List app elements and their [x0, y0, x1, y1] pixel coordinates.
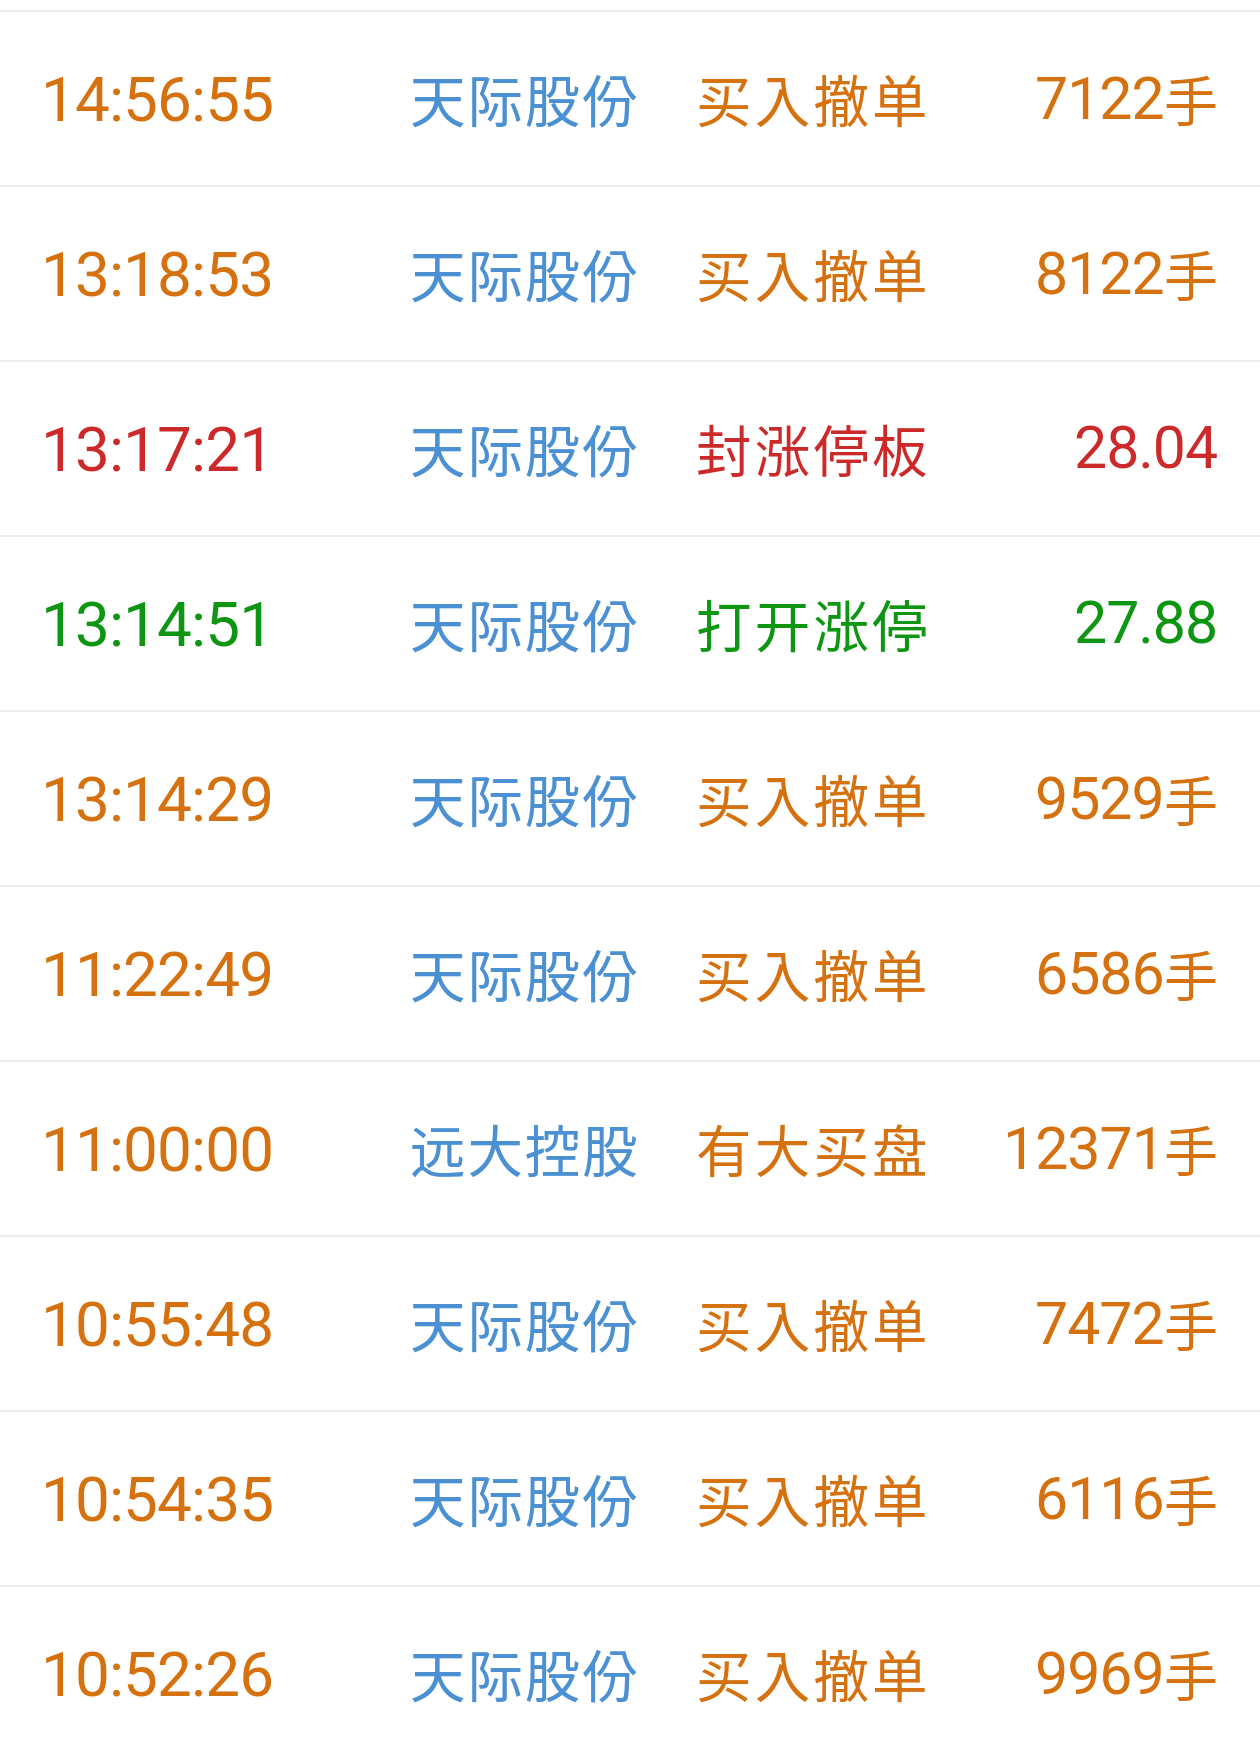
staticText: 8122 — [1035, 239, 1164, 308]
staticText: 手 — [1164, 1109, 1218, 1187]
button[interactable]: 13:14:51 — [0, 537, 1260, 710]
staticText: 27.88 — [1074, 588, 1218, 657]
staticText: 手 — [1164, 1634, 1218, 1712]
staticText: 7472 — [1035, 1289, 1164, 1358]
button[interactable]: 11:22:49 — [0, 887, 1260, 1060]
staticText: 手 — [1164, 1284, 1218, 1362]
staticText: 手 — [1164, 234, 1218, 312]
staticText: 9969 — [1035, 1639, 1164, 1708]
staticText: 天际股份 — [410, 408, 640, 488]
staticText: 12371 — [1003, 1114, 1164, 1183]
staticText: 手 — [1164, 934, 1218, 1012]
staticText: 10:55:48 — [41, 1288, 274, 1361]
button[interactable]: 13:18:53 — [0, 187, 1260, 360]
staticText: 买入撤单 — [696, 1633, 931, 1713]
staticText: 天际股份 — [410, 233, 640, 313]
staticText: 手 — [1164, 759, 1218, 837]
staticText: 天际股份 — [410, 758, 640, 838]
staticText: 28.04 — [1074, 413, 1218, 482]
button[interactable]: 13:17:21 — [0, 362, 1260, 535]
staticText: 买入撤单 — [696, 233, 931, 313]
staticText: 天际股份 — [410, 583, 640, 663]
staticText: 有大买盘 — [696, 1108, 931, 1188]
staticText: 手 — [1164, 59, 1218, 137]
staticText: 天际股份 — [410, 1283, 640, 1363]
staticText: 天际股份 — [410, 933, 640, 1013]
staticText: 11:22:49 — [41, 938, 274, 1011]
staticText: 天际股份 — [410, 58, 640, 138]
staticText: 手 — [1164, 1459, 1218, 1537]
button[interactable]: 10:55:48 — [0, 1237, 1260, 1410]
staticText: 11:00:00 — [41, 1113, 274, 1186]
staticText: 6586 — [1035, 939, 1164, 1008]
staticText: 6116 — [1035, 1464, 1164, 1533]
staticText: 13:18:53 — [41, 238, 274, 311]
button[interactable]: 14:56:55 — [0, 12, 1260, 185]
staticText: 13:14:29 — [41, 763, 274, 836]
staticText: 封涨停板 — [696, 408, 931, 488]
staticText: 买入撤单 — [696, 933, 931, 1013]
staticText: 10:52:26 — [41, 1638, 274, 1711]
staticText: 14:56:55 — [41, 63, 274, 136]
staticText: 天际股份 — [410, 1633, 640, 1713]
button[interactable]: 10:54:35 — [0, 1412, 1260, 1585]
staticText: 7122 — [1035, 64, 1164, 133]
staticText: 买入撤单 — [696, 758, 931, 838]
staticText: 远大控股 — [410, 1108, 640, 1188]
staticText: 买入撤单 — [696, 58, 931, 138]
staticText: 10:54:35 — [41, 1463, 274, 1536]
staticText: 买入撤单 — [696, 1283, 931, 1363]
button[interactable]: 13:14:29 — [0, 712, 1260, 885]
staticText: 打开涨停 — [696, 583, 931, 663]
staticText: 13:17:21 — [41, 413, 274, 486]
staticText: 买入撤单 — [696, 1458, 931, 1538]
staticText: 13:14:51 — [41, 588, 274, 661]
staticText: 天际股份 — [410, 1458, 640, 1538]
button[interactable]: 10:52:26 — [0, 1587, 1260, 1748]
button[interactable]: 11:00:00 — [0, 1062, 1260, 1235]
staticText: 9529 — [1035, 764, 1164, 833]
